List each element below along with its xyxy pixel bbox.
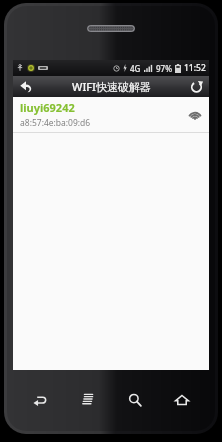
button[interactable]: Back — [20, 385, 60, 415]
button[interactable]: Refresh — [183, 76, 209, 97]
button[interactable]: liuyi69242 — [13, 97, 209, 133]
button[interactable]: Home — [162, 385, 202, 415]
button[interactable]: Search — [115, 385, 155, 415]
button[interactable]: Back — [13, 76, 39, 97]
button[interactable]: Menu — [67, 385, 107, 415]
staticText: WIFI快速破解器 — [72, 79, 151, 94]
staticText: liuyi69242 — [20, 100, 75, 115]
staticText: 97% — [156, 63, 172, 74]
staticText: a8:57:4e:ba:09:d6 — [20, 117, 91, 129]
staticText: 11:52 — [184, 62, 206, 74]
staticText: 4G — [130, 63, 141, 74]
